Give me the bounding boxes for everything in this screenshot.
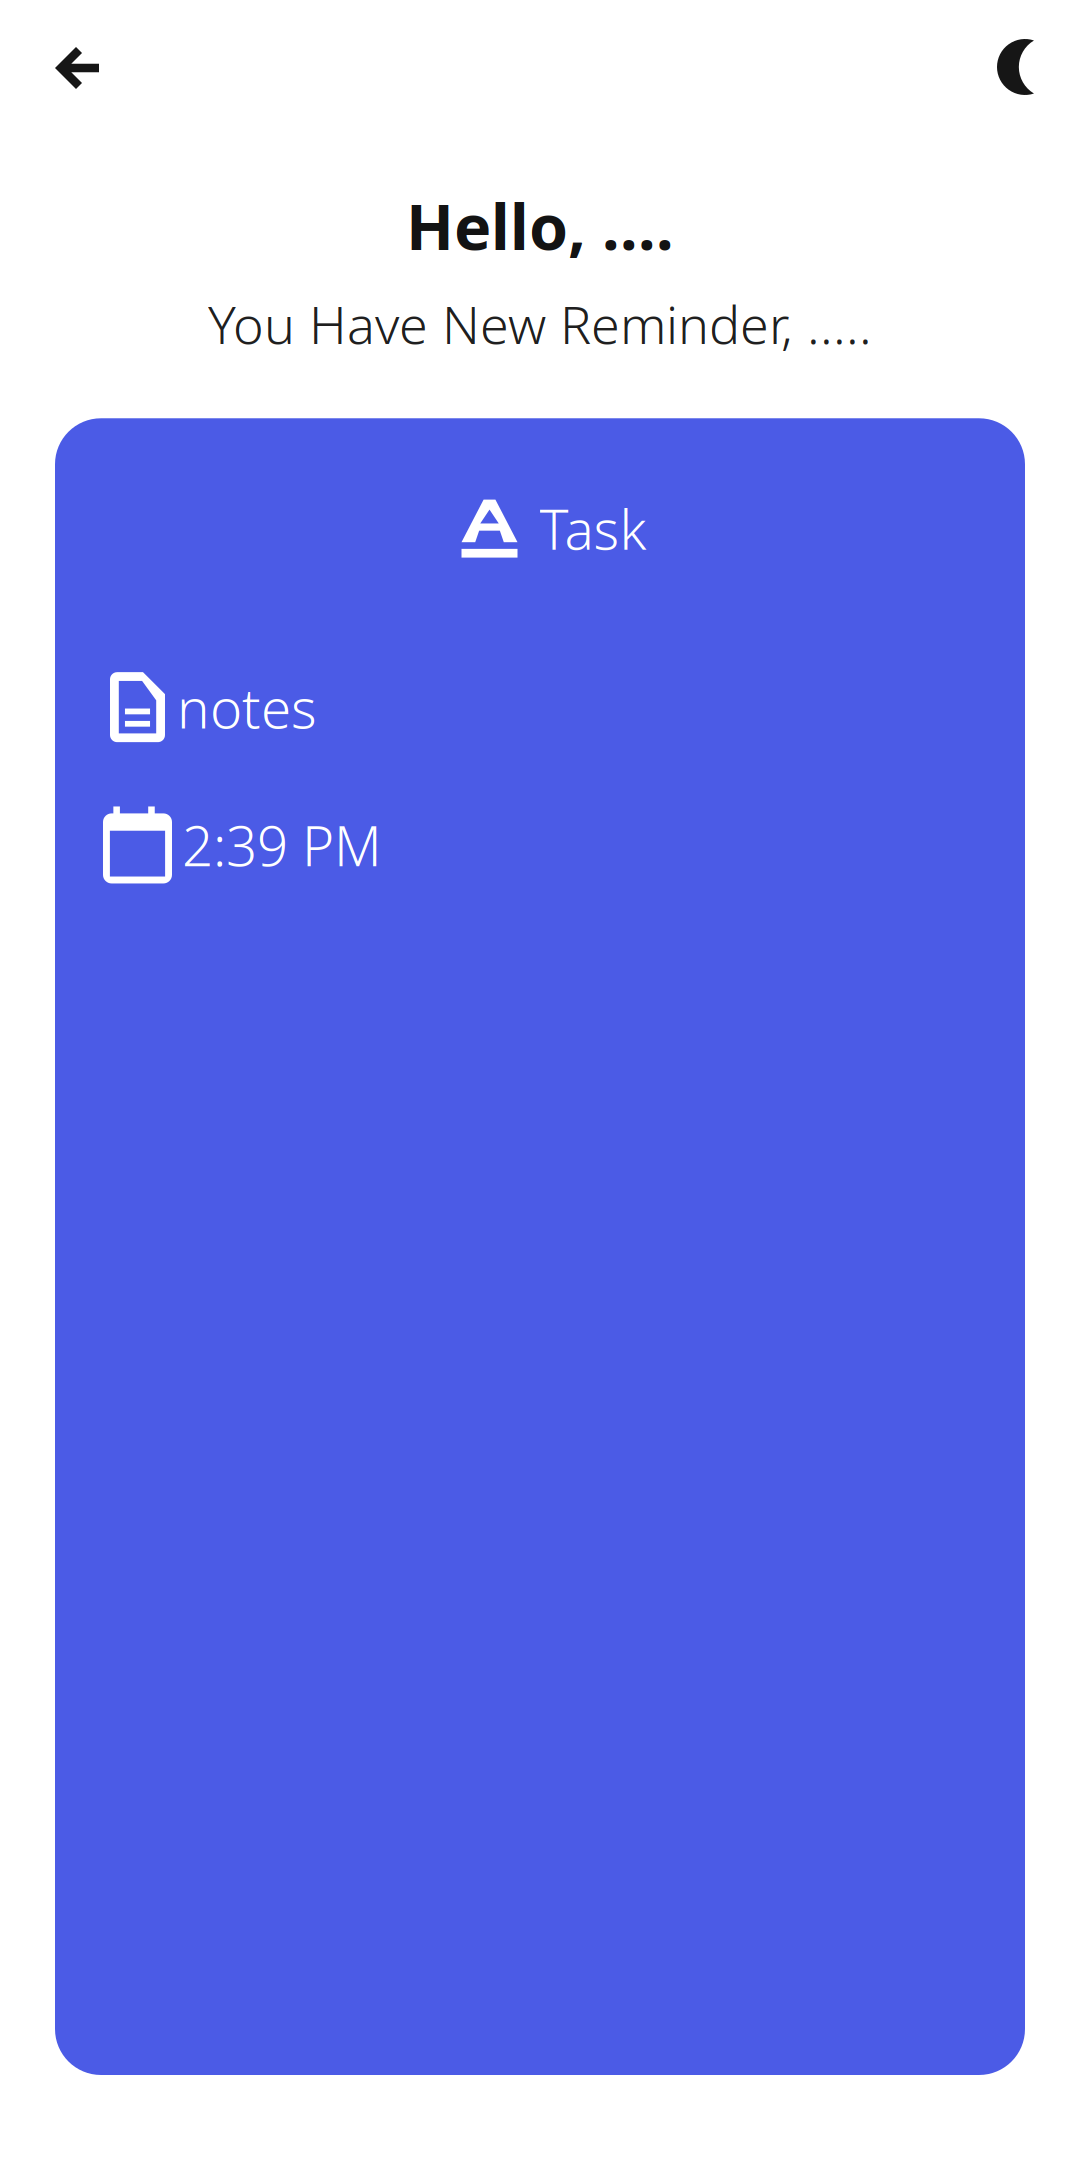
staticText: Hello, .... — [406, 184, 674, 267]
button[interactable]: Back — [0, 21, 129, 105]
button[interactable]: Toggle dark mode — [967, 18, 1080, 108]
staticText: You Have New Reminder, ..... — [208, 289, 872, 358]
staticText: Task — [539, 492, 646, 565]
staticText: notes — [177, 671, 317, 743]
staticText: 2:39 PM — [182, 809, 382, 881]
